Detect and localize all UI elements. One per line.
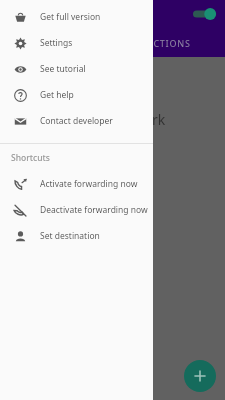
button[interactable]: Settings	[0, 30, 153, 56]
button[interactable]: See tutorial	[0, 56, 153, 82]
button[interactable]: Deactivate forwarding now	[0, 197, 153, 223]
staticText: See tutorial	[40, 63, 86, 75]
button[interactable]: Toggle forwarding	[192, 6, 218, 22]
staticText: Get full version	[40, 11, 101, 23]
button[interactable]: Add	[184, 360, 216, 392]
staticText: Activate forwarding now	[40, 178, 138, 190]
staticText: rk	[152, 110, 166, 129]
staticText: Get help	[40, 89, 74, 101]
staticText: Contact developer	[40, 115, 113, 127]
button[interactable]: ACTIONS	[147, 37, 191, 49]
staticText: Set destination	[40, 230, 100, 242]
staticText: Deactivate forwarding now	[40, 204, 148, 216]
staticText: Shortcuts	[11, 152, 50, 164]
button[interactable]: Contact developer	[0, 108, 153, 134]
button[interactable]: Get full version	[0, 4, 153, 30]
button[interactable]: Get help	[0, 82, 153, 108]
button[interactable]: Set destination	[0, 223, 153, 249]
staticText: Settings	[40, 37, 73, 49]
button[interactable]: Activate forwarding now	[0, 171, 153, 197]
